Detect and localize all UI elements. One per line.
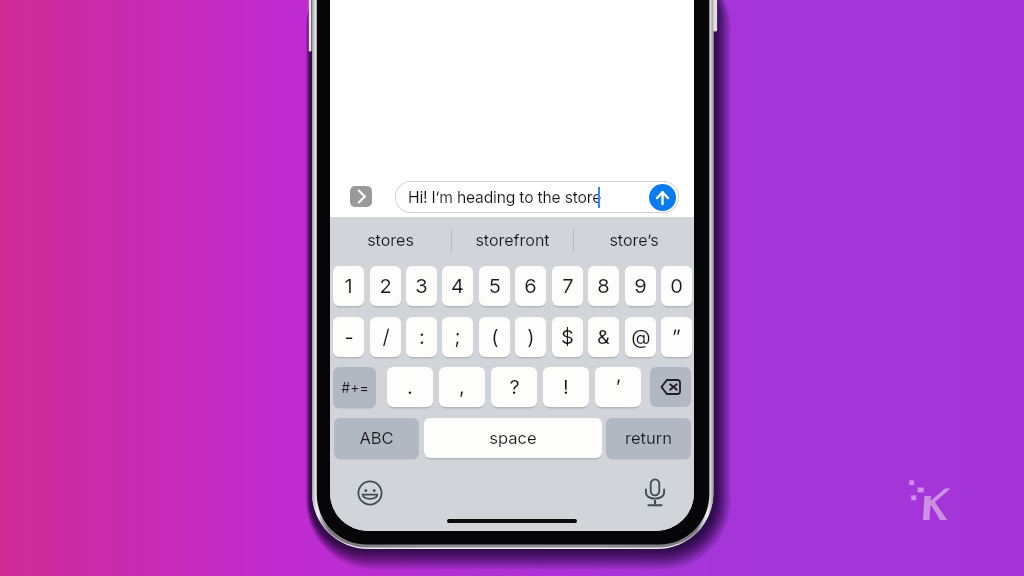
button[interactable]: 4	[442, 266, 473, 308]
staticText: 1	[344, 274, 353, 298]
staticText: ?	[509, 375, 520, 399]
staticText: /	[382, 325, 390, 349]
staticText: )	[527, 325, 535, 349]
button[interactable]: storefront	[451, 217, 573, 259]
button[interactable]: ABC	[334, 418, 419, 460]
staticText: ”	[672, 325, 681, 349]
button[interactable]: ’	[595, 367, 641, 409]
button[interactable]: Emoji keyboard	[356, 479, 384, 507]
button[interactable]: Dictation	[641, 479, 669, 507]
button[interactable]: 1	[333, 266, 364, 308]
button[interactable]: -	[333, 317, 364, 359]
button[interactable]: Hi! I’m heading to the store	[395, 181, 679, 213]
button[interactable]: 6	[515, 266, 546, 308]
button[interactable]: (	[479, 317, 510, 359]
button[interactable]: ?	[491, 367, 537, 409]
staticText: -	[344, 325, 354, 349]
staticText: (	[491, 325, 499, 349]
button[interactable]: 2	[370, 266, 401, 308]
staticText: @	[631, 325, 651, 349]
button[interactable]: stores	[330, 217, 451, 259]
button[interactable]: @	[625, 317, 656, 359]
staticText: #+=	[341, 379, 369, 396]
staticText: $	[561, 325, 574, 349]
staticText: 4	[451, 274, 464, 298]
staticText: Hi! I’m heading to the store	[408, 188, 602, 207]
staticText: 8	[597, 274, 610, 298]
button[interactable]: #+=	[333, 367, 376, 409]
staticText: :	[419, 325, 425, 349]
button[interactable]: 7	[552, 266, 583, 308]
button[interactable]: !	[543, 367, 589, 409]
staticText: 3	[415, 274, 428, 298]
button[interactable]: Send message	[649, 184, 676, 211]
button[interactable]: .	[387, 367, 433, 409]
staticText: 0	[670, 274, 683, 298]
button[interactable]: &	[588, 317, 619, 359]
staticText: ,	[459, 375, 465, 399]
button[interactable]: ,	[439, 367, 485, 409]
staticText: !	[563, 375, 569, 399]
staticText: 2	[379, 274, 392, 298]
button[interactable]: 5	[479, 266, 510, 308]
staticText: return	[625, 428, 672, 448]
staticText: 7	[562, 274, 574, 298]
button[interactable]: space	[424, 418, 602, 460]
button[interactable]: Backspace	[650, 367, 691, 407]
staticText: space	[489, 428, 537, 448]
button[interactable]: store’s	[573, 217, 694, 259]
staticText: &	[597, 325, 610, 349]
button[interactable]: Show apps	[350, 186, 372, 207]
button[interactable]: ”	[661, 317, 692, 359]
staticText: 9	[634, 274, 647, 298]
staticText: store’s	[609, 230, 659, 249]
button[interactable]: 3	[406, 266, 437, 308]
staticText: ;	[454, 325, 461, 349]
staticText: 6	[524, 274, 537, 298]
button[interactable]: 0	[661, 266, 692, 308]
button[interactable]: /	[370, 317, 401, 359]
staticText: stores	[367, 230, 414, 249]
button[interactable]: 8	[588, 266, 619, 308]
button[interactable]: return	[606, 418, 691, 460]
staticText: storefront	[475, 230, 550, 249]
button[interactable]: 9	[625, 266, 656, 308]
staticText: .	[407, 375, 413, 399]
staticText: ’	[615, 375, 621, 399]
button[interactable]: ;	[442, 317, 473, 359]
staticText: ABC	[359, 428, 394, 448]
button[interactable]: )	[515, 317, 546, 359]
button[interactable]: :	[406, 317, 437, 359]
staticText: 5	[489, 274, 501, 298]
other: KnowTechie logo	[900, 470, 970, 532]
button[interactable]: $	[552, 317, 583, 359]
